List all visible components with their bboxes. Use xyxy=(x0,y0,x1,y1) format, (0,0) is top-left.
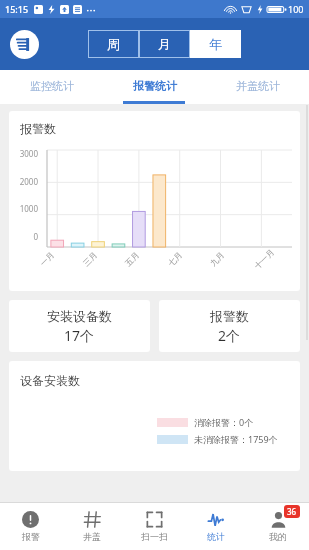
staticText: 36 xyxy=(287,506,297,517)
staticText: 九月 xyxy=(208,250,226,268)
staticText: 15:15 xyxy=(5,3,29,15)
staticText: 并盖统计 xyxy=(236,79,280,93)
other: 井盖 xyxy=(84,511,101,528)
staticText: 统计 xyxy=(207,531,225,542)
button[interactable]: 并盖统计 xyxy=(206,70,309,101)
staticText: 3000 xyxy=(9,148,38,159)
staticText: 十一月 xyxy=(252,247,276,271)
staticText: 100 xyxy=(288,3,304,15)
button[interactable]: 周 xyxy=(88,30,139,58)
staticText: 消除报警：0个 xyxy=(194,416,254,428)
button[interactable]: 月 xyxy=(139,30,190,58)
staticText: 三月 xyxy=(81,250,99,268)
other: 我的 xyxy=(270,511,287,528)
staticText: 一月 xyxy=(38,250,56,268)
staticText: 年 xyxy=(209,36,222,52)
button[interactable]: 安装设备数 xyxy=(9,300,150,352)
button[interactable]: 统计 xyxy=(185,503,247,550)
staticText: 五月 xyxy=(123,250,141,268)
staticText: 未消除报警：1759个 xyxy=(194,433,278,445)
staticText: 报警 xyxy=(22,531,40,542)
staticText: 报警数 xyxy=(210,308,249,324)
staticText: 监控统计 xyxy=(30,79,74,93)
staticText: 安装设备数 xyxy=(47,308,112,324)
staticText: 周 xyxy=(107,36,120,52)
button[interactable]: 扫一扫 xyxy=(123,503,185,550)
button[interactable]: 年 xyxy=(190,30,241,58)
staticText: 报警统计 xyxy=(133,79,177,93)
button[interactable]: Logo xyxy=(10,30,39,59)
staticText: 1000 xyxy=(9,203,38,214)
staticText: 报警数 xyxy=(20,121,56,136)
other: 扫一扫 xyxy=(146,511,163,528)
button[interactable]: 我的 xyxy=(247,503,309,550)
staticText: 2个 xyxy=(218,326,241,345)
other: 报警 xyxy=(22,511,39,528)
staticText: 井盖 xyxy=(83,531,101,542)
staticText: 设备安装数 xyxy=(20,373,80,388)
staticText: 我的 xyxy=(269,531,287,542)
staticText: 扫一扫 xyxy=(141,531,168,542)
button[interactable]: 井盖 xyxy=(61,503,123,550)
button[interactable]: 报警数 xyxy=(159,300,300,352)
staticText: 月 xyxy=(158,36,171,52)
staticText: 0 xyxy=(9,231,38,242)
button[interactable]: 报警数 xyxy=(9,111,300,291)
staticText: 七月 xyxy=(166,250,184,268)
other: 统计 xyxy=(208,511,225,528)
button[interactable]: 设备安装数 xyxy=(9,361,300,471)
button[interactable]: 报警统计 xyxy=(103,70,206,101)
button[interactable]: 监控统计 xyxy=(0,70,103,101)
button[interactable]: 报警 xyxy=(0,503,61,550)
staticText: 2000 xyxy=(9,176,38,187)
staticText: 17个 xyxy=(64,326,95,345)
